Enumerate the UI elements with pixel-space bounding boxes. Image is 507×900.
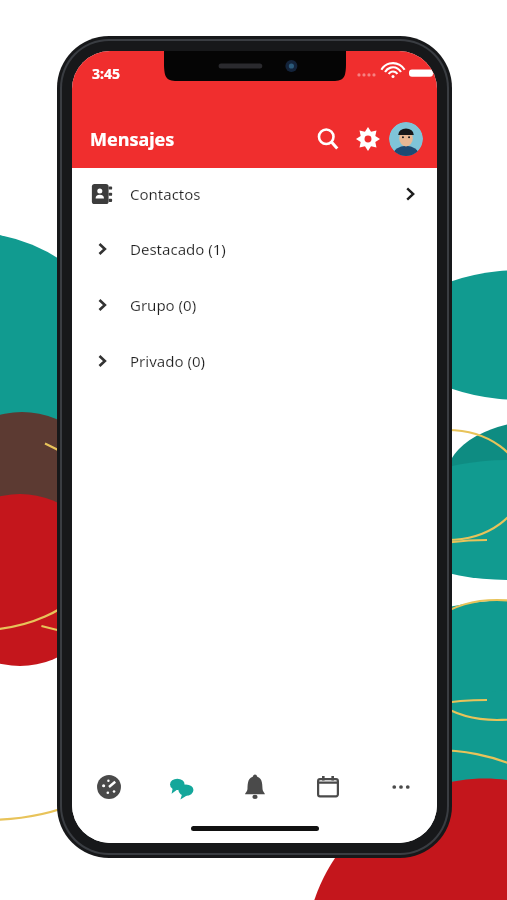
button[interactable]: Ajustes [349, 120, 387, 158]
button[interactable]: Perfil [389, 122, 423, 156]
button[interactable]: Contactos [72, 174, 437, 214]
staticText: Grupo (0) [130, 295, 197, 315]
button[interactable]: Más [364, 761, 437, 813]
button[interactable]: Privado (0) [72, 344, 437, 378]
button[interactable]: Destacado (1) [72, 232, 437, 266]
button[interactable]: Mensajes [145, 761, 218, 813]
button[interactable]: Panel [72, 761, 145, 813]
staticText: Contactos [130, 184, 201, 204]
staticText: Destacado (1) [130, 239, 226, 259]
button[interactable]: Notificaciones [218, 761, 291, 813]
staticText: Mensajes [90, 127, 175, 152]
button[interactable]: Calendario [291, 761, 364, 813]
button[interactable]: Grupo (0) [72, 288, 437, 322]
staticText: Privado (0) [130, 351, 205, 371]
button[interactable]: Buscar [309, 120, 347, 158]
staticText: 3:45 [92, 64, 120, 83]
